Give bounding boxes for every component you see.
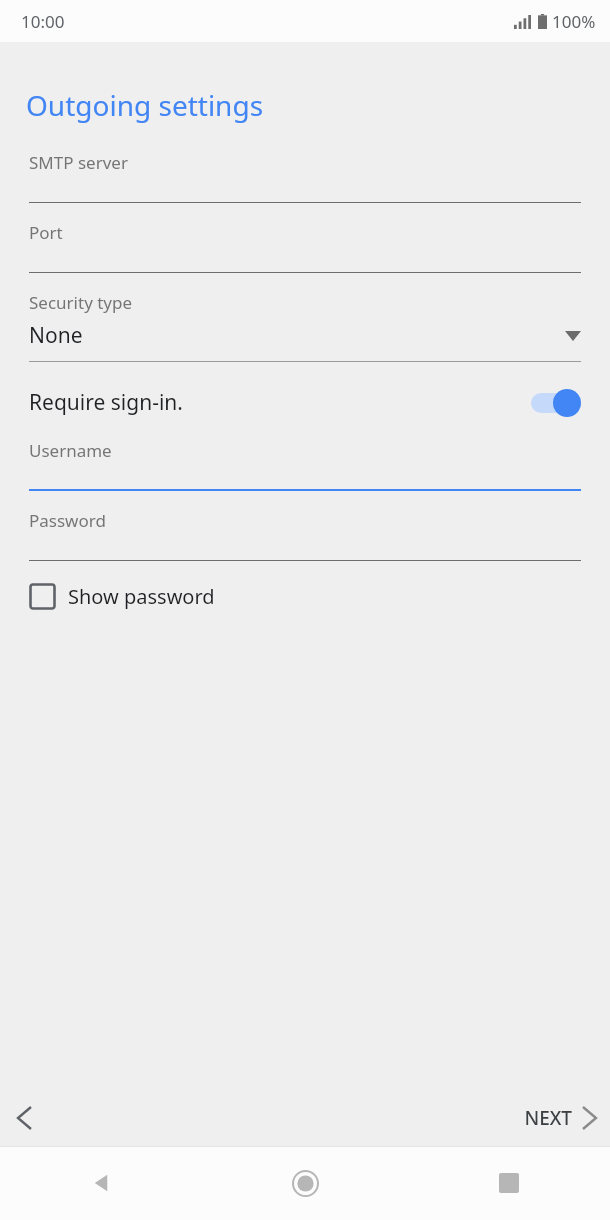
staticText: Port xyxy=(29,221,63,244)
staticText: Password xyxy=(29,509,106,532)
staticText: Require sign-in. xyxy=(29,388,529,417)
button[interactable]: Security type xyxy=(0,291,610,362)
button[interactable]: Require sign-in. xyxy=(0,378,610,427)
staticText: Security type xyxy=(29,291,133,314)
staticText: None xyxy=(29,321,565,350)
button[interactable]: Port xyxy=(0,221,610,273)
other: Require sign-in toggle xyxy=(529,389,581,417)
staticText: Show password xyxy=(68,583,215,610)
staticText: 100% xyxy=(552,10,596,33)
staticText: 10:00 xyxy=(21,10,65,33)
button[interactable]: Back xyxy=(0,1090,48,1146)
staticText: Outgoing settings xyxy=(26,86,264,124)
button[interactable]: Recent apps xyxy=(407,1146,610,1220)
button[interactable]: Show password xyxy=(0,577,235,616)
button[interactable]: Username xyxy=(0,439,610,491)
staticText: NEXT xyxy=(524,1105,572,1131)
staticText: Username xyxy=(29,439,112,462)
button[interactable]: Password xyxy=(0,509,610,561)
staticText: SMTP server xyxy=(29,151,128,174)
button[interactable]: SMTP server xyxy=(0,151,610,203)
button[interactable]: Back xyxy=(0,1146,204,1220)
button[interactable]: NEXT xyxy=(506,1090,610,1146)
button[interactable]: Home xyxy=(204,1146,407,1220)
